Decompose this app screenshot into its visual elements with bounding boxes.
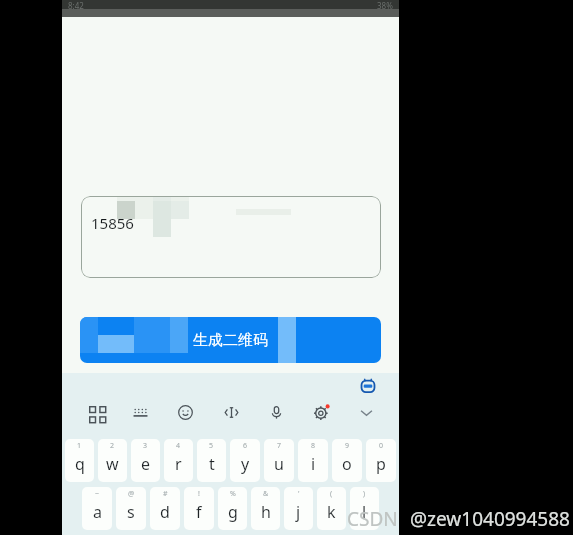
staticText: 4 (176, 441, 181, 451)
button[interactable]: Collapse keyboard (355, 401, 377, 423)
staticText: u (274, 453, 284, 475)
button[interactable]: ~ (82, 487, 112, 530)
staticText: & (263, 489, 269, 499)
staticText: 生成二维码 (193, 331, 268, 350)
staticText: d (160, 501, 170, 523)
button[interactable]: 5 (197, 439, 226, 482)
staticText: e (141, 453, 151, 475)
button[interactable]: % (218, 487, 247, 530)
staticText: y (241, 453, 250, 475)
button[interactable]: 6 (230, 439, 260, 482)
button[interactable]: 15856 (81, 196, 381, 278)
button[interactable]: 3 (131, 439, 160, 482)
button[interactable]: 7 (264, 439, 294, 482)
button[interactable]: Apps (84, 401, 106, 423)
staticText: j (296, 501, 301, 523)
staticText: 0 (379, 441, 384, 451)
staticText: 15856 (91, 213, 134, 233)
staticText: CSDN (347, 506, 398, 532)
staticText: ! (198, 489, 200, 499)
button[interactable]: ) (350, 487, 379, 530)
button[interactable]: Emoji (174, 401, 196, 423)
button[interactable]: Voice input (265, 401, 287, 423)
staticText: 2 (110, 441, 115, 451)
staticText: @ (128, 489, 135, 499)
staticText: o (342, 453, 352, 475)
button[interactable]: ' (284, 487, 313, 530)
staticText: q (75, 453, 85, 475)
staticText: ~ (95, 489, 100, 499)
staticText: 5 (209, 441, 214, 451)
staticText: t (209, 453, 215, 475)
staticText: 7 (277, 441, 282, 451)
staticText: a (93, 501, 102, 523)
staticText: h (261, 501, 271, 523)
staticText: p (376, 453, 386, 475)
button[interactable]: 0 (366, 439, 396, 482)
staticText: ) (363, 489, 366, 499)
staticText: 3 (143, 441, 148, 451)
button[interactable]: ( (317, 487, 346, 530)
button[interactable]: 1 (65, 439, 94, 482)
button[interactable]: Text cursor (220, 401, 242, 423)
button[interactable]: 8 (298, 439, 328, 482)
staticText: 38% (377, 0, 393, 9)
button[interactable]: 9 (332, 439, 362, 482)
staticText: % (230, 489, 236, 499)
staticText: l (362, 501, 367, 523)
button[interactable]: Settings (310, 401, 332, 423)
button[interactable]: @ (116, 487, 146, 530)
staticText: ' (298, 489, 300, 499)
staticText: 1 (77, 441, 82, 451)
staticText: ( (330, 489, 333, 499)
staticText: # (163, 489, 168, 499)
button[interactable]: & (251, 487, 280, 530)
staticText: w (106, 453, 119, 475)
staticText: @zew1040994588 (410, 506, 570, 532)
staticText: 6 (243, 441, 248, 451)
staticText: g (228, 501, 238, 523)
staticText: i (311, 453, 316, 475)
staticText: r (175, 453, 182, 475)
staticText: k (327, 501, 336, 523)
staticText: 8 (311, 441, 316, 451)
button[interactable]: # (150, 487, 180, 530)
button[interactable]: 2 (98, 439, 127, 482)
staticText: f (196, 501, 202, 523)
button[interactable]: Assistant (359, 377, 377, 395)
staticText: 9 (345, 441, 350, 451)
staticText: s (127, 501, 135, 523)
button[interactable]: 生成二维码 (80, 317, 381, 363)
staticText: 8:42 (68, 0, 84, 9)
button[interactable]: ! (184, 487, 214, 530)
button[interactable]: Keyboard layout (129, 401, 151, 423)
button[interactable]: 4 (164, 439, 193, 482)
